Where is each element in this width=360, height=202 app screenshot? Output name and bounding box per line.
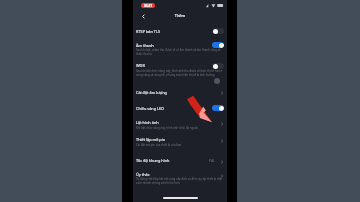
button[interactable]: Toggle on bbox=[212, 42, 224, 48]
staticText: Lật hình ảnh bbox=[136, 120, 159, 125]
staticText: WDR bbox=[136, 63, 145, 68]
button[interactable]: Toggle on bbox=[212, 105, 224, 111]
staticText: Sau khi bật chức năng này, hình ảnh thu … bbox=[136, 69, 225, 77]
staticText: Chiếu sáng LED bbox=[136, 106, 165, 111]
button[interactable]: Open bbox=[218, 172, 226, 180]
staticText: Ủy thác bbox=[136, 172, 150, 177]
staticText: Cài đặt âm lượng bbox=[136, 90, 167, 95]
staticText: Thêm bbox=[133, 13, 227, 18]
button[interactable]: Open bbox=[218, 158, 226, 166]
staticText: Khi bật chức năng này, hình ảnh sẽ bị lậ… bbox=[136, 126, 225, 130]
button[interactable]: Open bbox=[218, 137, 226, 145]
staticText: 06:21 bbox=[144, 4, 153, 8]
staticText: Tự động thiết lập kết nối cung cấp dịch … bbox=[136, 177, 225, 185]
staticText: Thiết lập mã pin bbox=[136, 137, 166, 142]
staticText: Sau khi bật, video thu được sẽ có âm tha… bbox=[136, 48, 225, 56]
staticText: Âm thanh bbox=[136, 43, 154, 48]
button[interactable]: Open bbox=[218, 120, 226, 128]
button[interactable]: Toggle off bbox=[212, 28, 224, 34]
button[interactable]: Back bbox=[137, 10, 149, 22]
button[interactable]: Toggle off bbox=[212, 63, 224, 69]
staticText: Cài đặt mã pin của thiết bị của bạn. bbox=[136, 143, 225, 147]
staticText: Tốc độ khung hình bbox=[136, 158, 170, 163]
button[interactable]: Open bbox=[218, 89, 226, 97]
staticText: PAL bbox=[209, 158, 215, 163]
staticText: RTSP bản TLS bbox=[136, 29, 161, 34]
